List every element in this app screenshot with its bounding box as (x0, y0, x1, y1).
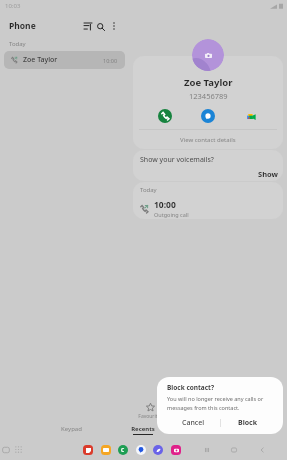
button[interactable]: Search (94, 20, 107, 33)
button[interactable]: App 1 (83, 445, 93, 455)
button[interactable]: Sort (82, 20, 94, 32)
button[interactable]: App 4 (136, 445, 146, 455)
button[interactable]: App 6 (171, 445, 181, 455)
button[interactable]: Show (257, 168, 279, 180)
staticText: Recents (131, 425, 155, 433)
staticText: Zoe Taylor (184, 76, 233, 89)
button[interactable]: All apps (14, 445, 23, 454)
staticText: Block (238, 418, 258, 428)
button[interactable]: Video call (244, 109, 258, 123)
staticText: Show your voicemails? (140, 155, 214, 165)
button[interactable]: Block (221, 416, 275, 430)
staticText: 123456789 (189, 91, 228, 101)
button[interactable]: Home (229, 445, 239, 455)
staticText: Today (9, 40, 26, 48)
button[interactable]: View contact details (133, 130, 283, 149)
button[interactable]: Cancel (167, 416, 220, 430)
staticText: 10:00 (103, 57, 118, 64)
staticText: View contact details (180, 136, 236, 144)
button[interactable]: App 2 (101, 445, 111, 455)
button[interactable]: Keypad (35, 425, 107, 434)
staticText: Today (140, 186, 157, 194)
button[interactable]: Zoe Taylor (4, 51, 125, 69)
staticText: Show (258, 169, 278, 179)
button[interactable]: Back (257, 445, 267, 455)
staticText: 10:03 (5, 2, 21, 10)
staticText: Block contact? (167, 383, 215, 392)
button[interactable]: 10:00 (140, 199, 276, 218)
staticText: You will no longer receive any calls or … (167, 395, 275, 412)
staticText: Outgoing call (154, 211, 189, 218)
button[interactable]: Message (201, 109, 215, 123)
staticText: Favourites (138, 413, 163, 420)
staticText: Zoe Taylor (23, 55, 58, 65)
button[interactable]: Favourites (136, 403, 164, 420)
staticText: C (121, 447, 125, 454)
button[interactable]: Multi window (1, 445, 10, 454)
button[interactable]: Recent apps (202, 445, 212, 455)
staticText: Cancel (182, 418, 205, 428)
button[interactable]: More options (107, 19, 121, 33)
staticText: 10:00 (154, 199, 176, 211)
staticText: Keypad (61, 425, 82, 433)
button[interactable]: App 5 (153, 445, 163, 455)
staticText: Phone (9, 20, 36, 32)
button[interactable]: Recents (107, 425, 179, 435)
button[interactable]: App 3 (118, 445, 128, 455)
button[interactable]: Call (158, 109, 172, 123)
